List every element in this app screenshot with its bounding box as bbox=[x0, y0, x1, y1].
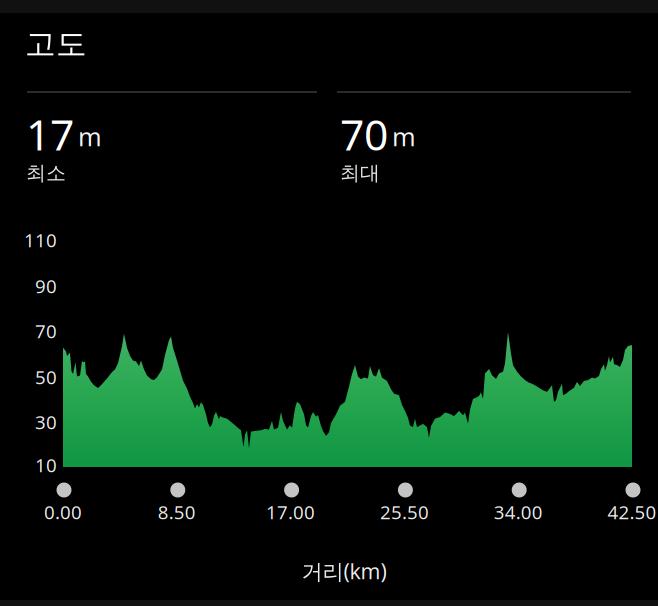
staticText: m bbox=[78, 120, 102, 153]
staticText: 거리(km) bbox=[301, 557, 386, 585]
staticText: 17 bbox=[26, 106, 74, 162]
staticText: 70 bbox=[340, 106, 388, 162]
button[interactable]: 17 bbox=[26, 116, 263, 192]
staticText: 고도 bbox=[25, 25, 87, 63]
staticText: 10 bbox=[35, 453, 57, 477]
staticText: 42.50 bbox=[607, 500, 656, 524]
staticText: 70 bbox=[35, 319, 57, 343]
staticText: 30 bbox=[35, 410, 57, 434]
staticText: 17.00 bbox=[266, 500, 315, 524]
staticText: 110 bbox=[24, 228, 57, 252]
staticText: 25.50 bbox=[380, 500, 429, 524]
staticText: m bbox=[392, 120, 416, 153]
staticText: 0.00 bbox=[44, 500, 82, 524]
staticText: 최소 bbox=[26, 161, 66, 185]
staticText: 최대 bbox=[340, 161, 380, 185]
staticText: 90 bbox=[35, 274, 57, 298]
staticText: 34.00 bbox=[494, 500, 543, 524]
staticText: 50 bbox=[35, 365, 57, 389]
button[interactable]: 70 bbox=[340, 116, 577, 192]
staticText: 8.50 bbox=[158, 500, 196, 524]
